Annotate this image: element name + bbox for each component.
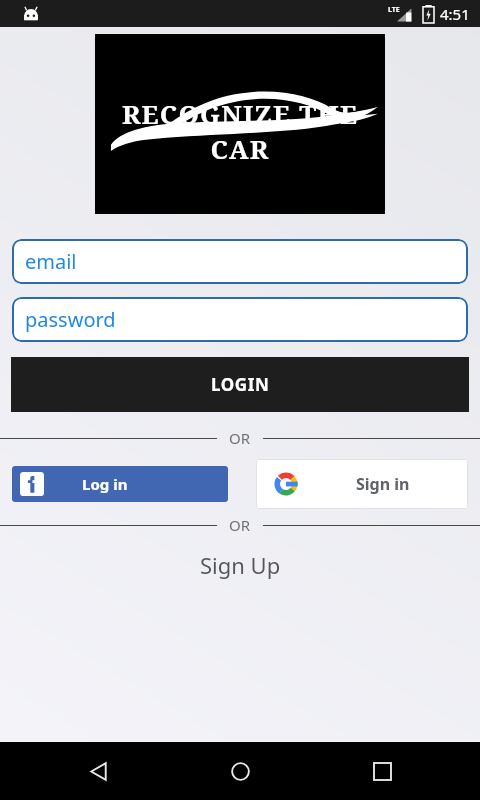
button[interactable]: Sign in: [256, 459, 468, 509]
staticText: password: [25, 306, 116, 333]
button[interactable]: password: [12, 297, 468, 342]
button[interactable]: Back: [78, 751, 118, 791]
staticText: Sign in: [356, 473, 410, 495]
staticText: LTE: [388, 5, 400, 15]
button[interactable]: Recent apps: [362, 751, 402, 791]
staticText: OR: [229, 515, 251, 535]
staticText: 4:51: [440, 4, 470, 24]
staticText: Log in: [82, 474, 128, 494]
staticText: LOGIN: [211, 373, 270, 396]
staticText: OR: [229, 428, 251, 448]
button[interactable]: Home: [220, 751, 260, 791]
staticText: email: [25, 248, 77, 275]
button[interactable]: LOGIN: [11, 357, 469, 412]
button[interactable]: email: [12, 239, 468, 284]
button[interactable]: Sign Up: [0, 550, 480, 580]
staticText: RECOGNIZE THE CAR: [95, 96, 385, 166]
button[interactable]: Log in: [12, 466, 228, 502]
staticText: Sign Up: [200, 550, 281, 580]
